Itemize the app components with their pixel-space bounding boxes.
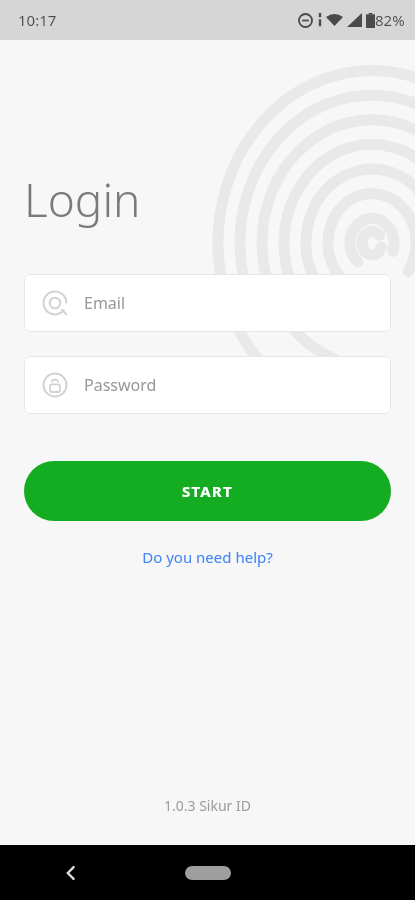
button[interactable]: Home [185, 866, 231, 880]
button[interactable]: Back [52, 854, 90, 892]
button[interactable]: START [24, 461, 391, 521]
button[interactable]: Password [24, 356, 391, 414]
staticText: Email [84, 292, 126, 314]
staticText: 1.0.3 Sikur ID [164, 796, 251, 815]
staticText: Login [24, 168, 141, 231]
staticText: 10:17 [18, 10, 57, 30]
staticText: Password [84, 374, 157, 396]
staticText: 82% [375, 10, 405, 30]
button[interactable]: Do you need help? [134, 543, 281, 571]
staticText: START [182, 481, 233, 501]
button[interactable]: Email [24, 274, 391, 332]
